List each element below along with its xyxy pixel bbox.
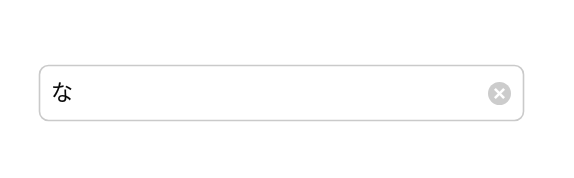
button[interactable]: Clear text xyxy=(488,82,511,105)
button[interactable]: な xyxy=(38,64,525,122)
staticText: な xyxy=(51,74,74,106)
staticText: な xyxy=(51,74,74,106)
staticText: な xyxy=(51,74,74,106)
